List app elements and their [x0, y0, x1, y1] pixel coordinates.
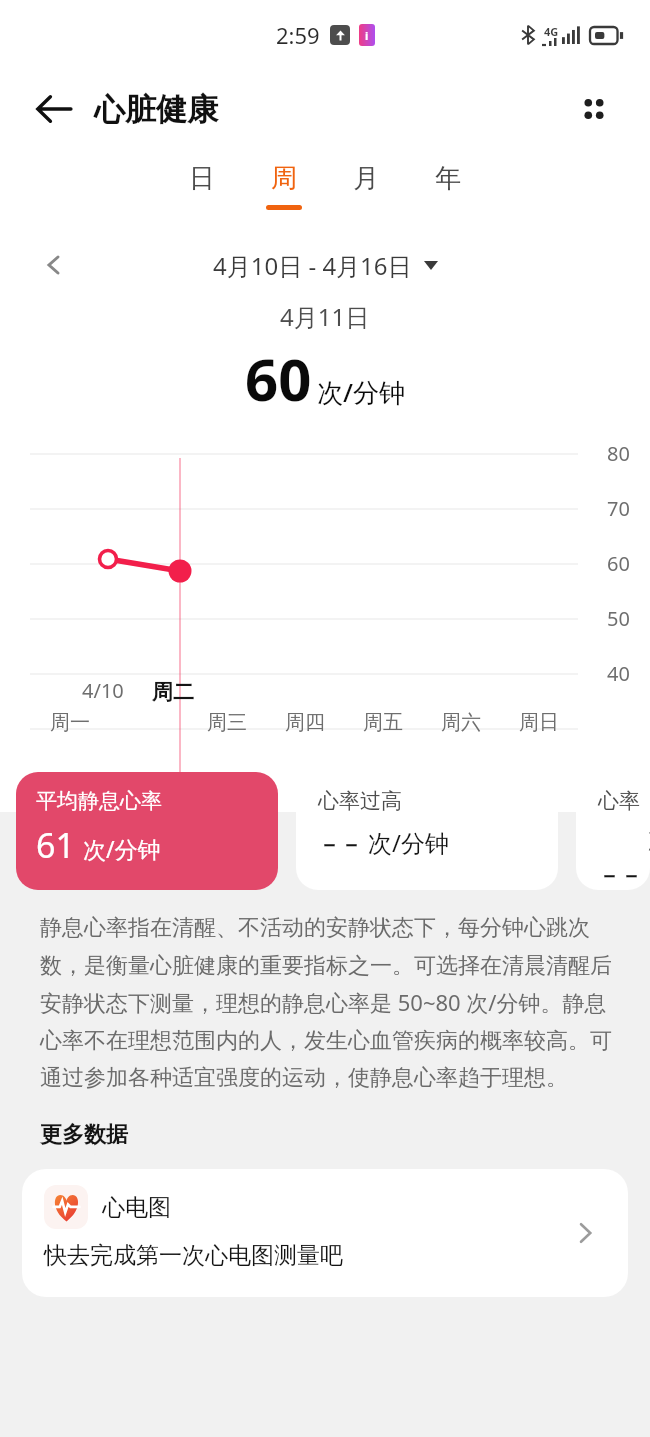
button[interactable]: 心电图: [22, 1169, 628, 1297]
staticText: 快去完成第一次心电图测量吧: [44, 1241, 343, 1270]
button[interactable]: Previous week: [30, 241, 78, 289]
staticText: 次/分钟: [83, 833, 161, 864]
staticText: 次/分钟: [648, 826, 650, 890]
button[interactable]: 年: [407, 162, 489, 205]
button[interactable]: Back: [30, 85, 218, 133]
staticText: 心电图: [102, 1193, 171, 1222]
staticText: 心率: [598, 788, 640, 814]
button[interactable]: 心率: [576, 772, 650, 890]
staticText: －－: [598, 862, 642, 890]
staticText: 周一: [50, 710, 90, 735]
staticText: 心率过高: [318, 788, 402, 814]
staticText: 周日: [519, 710, 559, 735]
staticText: 4月11日: [280, 300, 370, 333]
staticText: －－: [318, 831, 362, 859]
staticText: 40: [607, 660, 630, 687]
button[interactable]: More options: [566, 81, 622, 137]
staticText: 50: [607, 605, 630, 632]
staticText: 平均静息心率: [36, 788, 162, 814]
other: Back: [30, 85, 78, 133]
staticText: 4G: [544, 24, 559, 39]
staticText: 周四: [285, 710, 325, 735]
button[interactable]: 周: [243, 162, 325, 210]
button[interactable]: 4月10日 - 4月16日: [213, 249, 438, 282]
staticText: 周二: [152, 679, 194, 705]
other: Open ECG: [568, 1216, 602, 1250]
staticText: 4月10日 - 4月16日: [213, 249, 412, 282]
staticText: 61: [36, 822, 75, 868]
button[interactable]: 心率过高: [296, 772, 558, 890]
staticText: 日: [189, 162, 215, 195]
staticText: 月: [353, 162, 379, 195]
staticText: 4/10: [82, 677, 124, 704]
staticText: 周三: [207, 710, 247, 735]
button[interactable]: 平均静息心率: [16, 772, 278, 890]
staticText: 2:59: [276, 20, 320, 50]
staticText: 60: [607, 550, 630, 577]
staticText: 次/分钟: [368, 826, 449, 859]
button[interactable]: 月: [325, 162, 407, 205]
staticText: i: [365, 28, 369, 43]
staticText: 年: [435, 162, 461, 195]
staticText: 次/分钟: [317, 374, 406, 410]
staticText: 周: [271, 162, 297, 195]
staticText: 70: [607, 495, 630, 522]
staticText: 周六: [441, 710, 481, 735]
staticText: 60: [245, 339, 312, 418]
staticText: 静息心率指在清醒、不活动的安静状态下，每分钟心跳次数，是衡量心脏健康的重要指标之…: [40, 914, 616, 1091]
staticText: 心脏健康: [94, 90, 218, 129]
staticText: 周五: [363, 710, 403, 735]
button[interactable]: 日: [161, 162, 243, 205]
staticText: 80: [607, 440, 630, 467]
staticText: 更多数据: [40, 1121, 128, 1149]
